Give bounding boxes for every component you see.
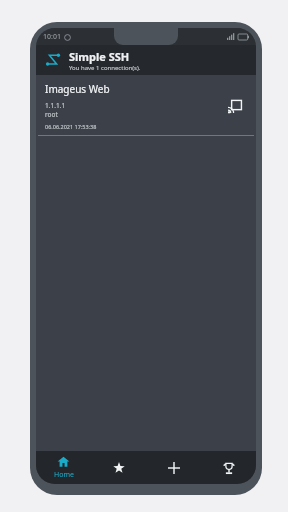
staticText: root <box>45 110 58 119</box>
button[interactable]: Home <box>36 451 91 484</box>
button[interactable]: Connect <box>223 94 247 118</box>
button[interactable]: Premium <box>201 451 256 484</box>
staticText: Home <box>54 470 74 480</box>
button[interactable]: Add <box>146 451 201 484</box>
staticText: You have 1 connection(s). <box>69 64 141 72</box>
staticText: 1.1.1.1 <box>45 101 66 110</box>
staticText: Simple SSH <box>69 49 130 64</box>
staticText: 06.06.2021 17:53:38 <box>45 123 97 130</box>
button[interactable]: Imageus Web <box>36 75 256 136</box>
staticText: Imageus Web <box>45 82 110 96</box>
staticText: 10:01 <box>43 32 61 42</box>
button[interactable]: Favorites <box>91 451 146 484</box>
